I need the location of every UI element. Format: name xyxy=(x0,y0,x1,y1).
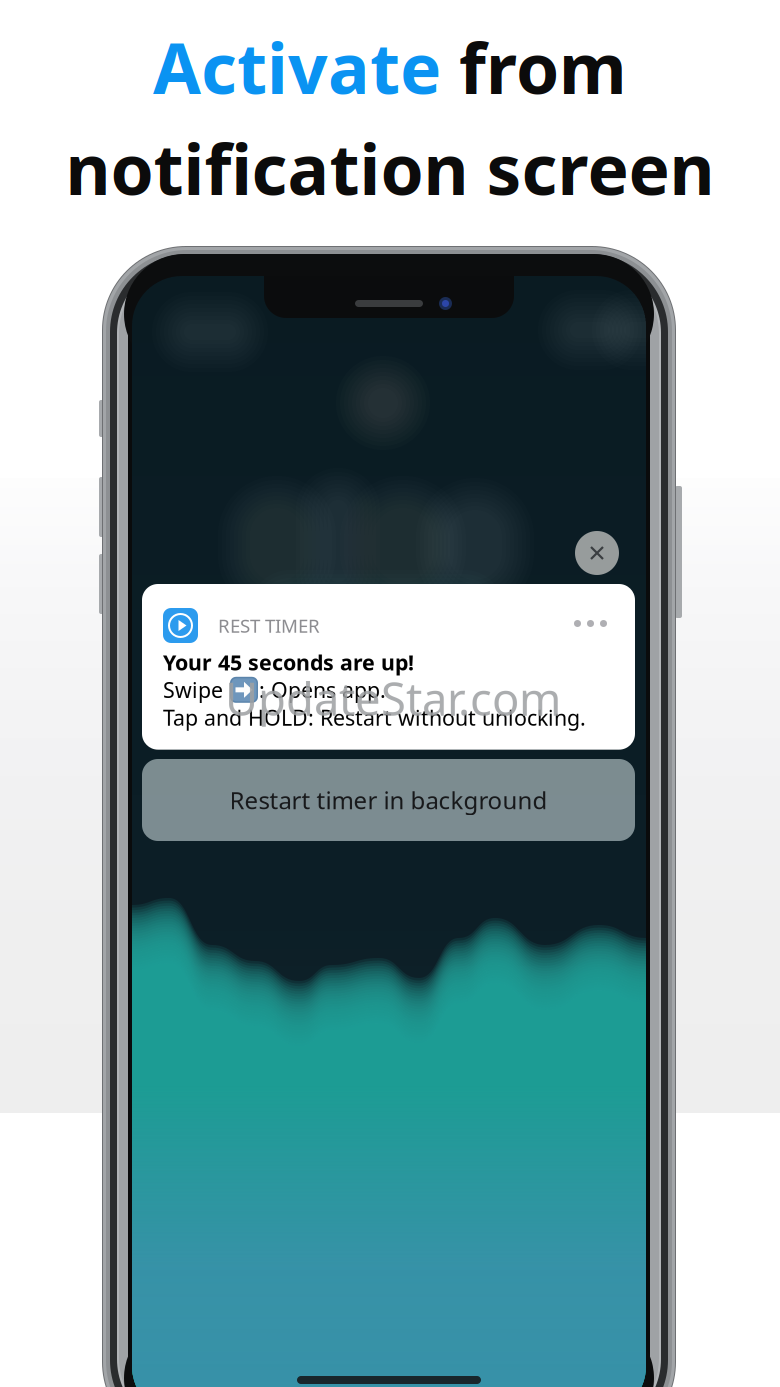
staticText: notification screen xyxy=(65,122,714,214)
button[interactable]: REST TIMER xyxy=(142,584,635,750)
staticText: Restart timer in background xyxy=(229,784,547,816)
staticText: from xyxy=(441,21,627,113)
staticText: UpdateStar.com xyxy=(225,668,561,728)
button[interactable]: Close notification xyxy=(575,531,619,575)
staticText: : Opens app. xyxy=(259,676,386,704)
staticText: REST TIMER xyxy=(218,613,320,638)
staticText: Your 45 seconds are up! xyxy=(163,648,414,676)
button[interactable]: Restart timer in background xyxy=(142,759,635,841)
staticText: Tap and HOLD: Restart without unlocking. xyxy=(163,703,586,732)
staticText: Activate xyxy=(153,21,441,113)
staticText: Swipe xyxy=(163,676,229,704)
